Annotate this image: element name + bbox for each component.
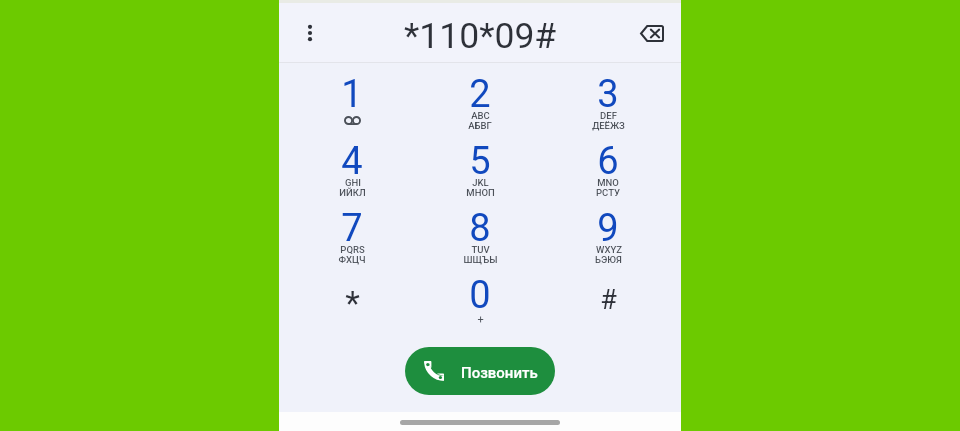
staticText: Позвонить xyxy=(461,364,538,382)
staticText: ЬЭЮЯ xyxy=(595,254,622,265)
staticText: MNO xyxy=(597,177,619,187)
staticText: TUV xyxy=(471,244,490,254)
staticText: АБВГ xyxy=(468,120,492,131)
button[interactable]: 0 xyxy=(416,265,544,332)
staticText: JKL xyxy=(472,177,489,187)
staticText: ФХЦЧ xyxy=(338,254,366,265)
staticText: 1 xyxy=(341,72,363,117)
staticText: 6 xyxy=(597,139,619,184)
staticText: ДЕЁЖЗ xyxy=(592,120,625,131)
button[interactable]: Backspace xyxy=(634,15,670,51)
staticText: PQRS xyxy=(340,244,365,254)
staticText: 2 xyxy=(469,72,491,117)
staticText: 0 xyxy=(469,273,491,318)
staticText: + xyxy=(477,313,484,326)
staticText: *110*09# xyxy=(404,15,557,57)
staticText: 9 xyxy=(597,206,619,251)
staticText: DEF xyxy=(600,110,617,120)
button[interactable]: 8 xyxy=(416,198,544,265)
staticText: РСТУ xyxy=(596,187,620,198)
button[interactable]: More options xyxy=(292,15,328,51)
staticText: 3 xyxy=(597,72,619,117)
staticText: 4 xyxy=(341,139,363,184)
button[interactable]: 1 xyxy=(288,64,416,131)
staticText: 5 xyxy=(469,139,491,184)
staticText: 7 xyxy=(341,206,363,251)
staticText: GHI xyxy=(345,177,361,187)
button[interactable]: 7 xyxy=(288,198,416,265)
button[interactable]: 2 xyxy=(416,64,544,131)
staticText: # xyxy=(600,284,617,316)
button[interactable]: * xyxy=(288,265,416,332)
staticText: WXYZ xyxy=(596,244,622,254)
button[interactable]: 4 xyxy=(288,131,416,198)
button[interactable]: 5 xyxy=(416,131,544,198)
button[interactable]: 9 xyxy=(544,198,672,265)
button[interactable]: 6 xyxy=(544,131,672,198)
staticText: ИЙКЛ xyxy=(339,187,366,198)
button[interactable]: Позвонить xyxy=(405,347,555,395)
staticText: ШЩЪЫ xyxy=(463,254,498,265)
button[interactable]: 3 xyxy=(544,64,672,131)
button[interactable]: # xyxy=(544,265,672,332)
staticText: МНОП xyxy=(466,187,495,198)
staticText: ABC xyxy=(471,110,490,120)
staticText: * xyxy=(345,283,360,323)
staticText: 8 xyxy=(469,206,491,251)
